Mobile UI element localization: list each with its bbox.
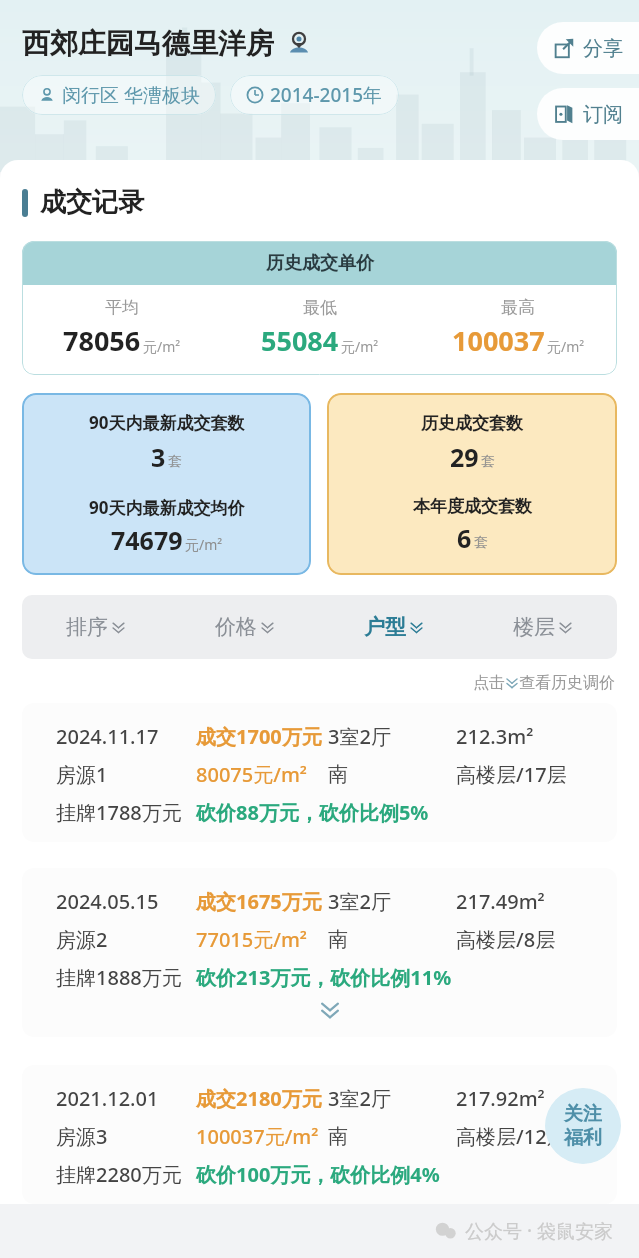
staticText: 100037 [452, 322, 545, 359]
button[interactable]: 分享 [537, 22, 639, 74]
staticText: 砍价88万元，砍价比例5% [196, 799, 429, 826]
staticText: 挂牌1788万元 [56, 799, 196, 826]
staticText: 房源2 [56, 926, 196, 953]
button[interactable]: 关注 [545, 1088, 621, 1164]
staticText: 高楼层/12层 [456, 1123, 567, 1150]
staticText: 最高 [501, 297, 535, 318]
staticText: 关注 [564, 1102, 602, 1126]
staticText: 房源1 [56, 761, 196, 788]
button[interactable]: 排序 [22, 595, 170, 659]
staticText: 订阅 [583, 102, 623, 127]
staticText: 平均 [105, 297, 139, 318]
staticText: 房源3 [56, 1123, 196, 1150]
staticText: 元/m² [547, 337, 585, 356]
staticText: 100037元/m² [196, 1123, 328, 1150]
staticText: 排序 [66, 614, 108, 640]
staticText: 217.49m² [456, 888, 545, 915]
staticText: 闵行区 华漕板块 [62, 82, 200, 108]
staticText: 90天内最新成交套数 [89, 411, 245, 434]
button[interactable]: 2024.11.17 [22, 703, 617, 842]
staticText: 2021.12.01 [56, 1085, 196, 1112]
button[interactable]: 点击 [0, 673, 615, 693]
staticText: 套 [481, 453, 495, 471]
staticText: 高楼层/17层 [456, 761, 567, 788]
staticText: 分享 [583, 36, 623, 61]
staticText: 成交1675万元 [196, 888, 328, 915]
staticText: 成交1700万元 [196, 723, 328, 750]
staticText: 历史成交单价 [266, 252, 374, 275]
button[interactable]: 2014-2015年 [230, 75, 399, 115]
staticText: 74679 [111, 523, 183, 557]
staticText: 2024.11.17 [56, 723, 196, 750]
button[interactable]: 2021.12.01 [22, 1065, 617, 1204]
staticText: 砍价213万元，砍价比例11% [196, 964, 452, 991]
staticText: 福利 [564, 1126, 602, 1150]
button[interactable]: 楼层 [468, 595, 617, 659]
button[interactable]: 价格 [170, 595, 319, 659]
button[interactable]: 位置 [284, 29, 314, 59]
staticText: 楼层 [513, 614, 555, 640]
staticText: 6 [457, 521, 472, 555]
button[interactable]: 闵行区 华漕板块 [22, 75, 216, 115]
staticText: 南 [328, 927, 456, 952]
staticText: 套 [474, 534, 488, 552]
staticText: 217.92m² [456, 1085, 545, 1112]
staticText: 历史成交套数 [421, 413, 523, 434]
staticText: 价格 [215, 614, 257, 640]
button[interactable]: 历史成交套数 [327, 393, 617, 575]
staticText: 点击 [473, 673, 505, 693]
staticText: 2024.05.15 [56, 888, 196, 915]
button[interactable] [56, 999, 603, 1021]
button[interactable]: 历史成交单价 [22, 241, 617, 375]
staticText: 3室2厅 [328, 1085, 456, 1112]
staticText: 最低 [303, 297, 337, 318]
staticText: 元/m² [185, 535, 223, 554]
staticText: 3室2厅 [328, 888, 456, 915]
staticText: 3 [151, 440, 166, 474]
staticText: 55084 [261, 322, 339, 359]
staticText: 212.3m² [456, 723, 534, 750]
staticText: 砍价100万元，砍价比例4% [196, 1161, 440, 1188]
button[interactable]: 订阅 [537, 88, 639, 140]
staticText: 挂牌2280万元 [56, 1161, 196, 1188]
staticText: 90天内最新成交均价 [89, 496, 245, 519]
staticText: 3室2厅 [328, 723, 456, 750]
staticText: 南 [328, 1124, 456, 1149]
staticText: 78056 [63, 322, 141, 359]
button[interactable]: 90天内最新成交套数 [22, 393, 311, 575]
button[interactable]: 户型 [319, 595, 468, 659]
staticText: 29 [450, 440, 479, 474]
staticText: 查看历史调价 [519, 673, 615, 693]
staticText: 成交2180万元 [196, 1085, 328, 1112]
staticText: 西郊庄园马德里洋房 [22, 26, 274, 61]
staticText: 套 [168, 453, 182, 471]
staticText: 2014-2015年 [270, 82, 383, 108]
staticText: 本年度成交套数 [413, 496, 532, 517]
button[interactable]: 2024.05.15 [22, 868, 617, 1037]
staticText: 挂牌1888万元 [56, 964, 196, 991]
staticText: 公众号 · 袋鼠安家 [465, 1218, 613, 1244]
staticText: 元/m² [143, 337, 181, 356]
staticText: 元/m² [341, 337, 379, 356]
staticText: 高楼层/8层 [456, 926, 556, 953]
staticText: 77015元/m² [196, 926, 328, 953]
staticText: 南 [328, 762, 456, 787]
staticText: 80075元/m² [196, 761, 328, 788]
staticText: 户型 [364, 614, 406, 640]
staticText: 成交记录 [40, 186, 144, 219]
